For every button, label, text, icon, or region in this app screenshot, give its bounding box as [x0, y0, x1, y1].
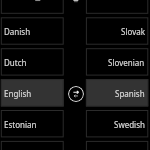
button[interactable]: Swedish [86, 110, 148, 137]
staticText: Swedish [114, 119, 145, 130]
staticText: Estonian [4, 119, 37, 130]
button[interactable]: Finnish [1, 141, 64, 150]
button[interactable] [86, 0, 148, 13]
staticText: Slovak [121, 26, 145, 37]
button[interactable]: Swap languages [68, 86, 84, 102]
staticText: English [4, 88, 32, 99]
button[interactable]: Slovenian [86, 48, 148, 75]
button[interactable]: English [1, 79, 64, 106]
button[interactable]: Thai [86, 141, 148, 150]
button[interactable]: Spanish [86, 79, 148, 106]
staticText: Dutch [4, 57, 27, 68]
staticText: Danish [4, 26, 31, 37]
button[interactable]: Dutch [1, 48, 64, 75]
button[interactable]: Danish [1, 17, 64, 44]
button[interactable]: Estonian [1, 110, 64, 137]
staticText: Spanish [115, 88, 145, 99]
button[interactable] [1, 0, 64, 13]
staticText: Slovenian [108, 57, 145, 68]
button[interactable]: Slovak [86, 17, 148, 44]
